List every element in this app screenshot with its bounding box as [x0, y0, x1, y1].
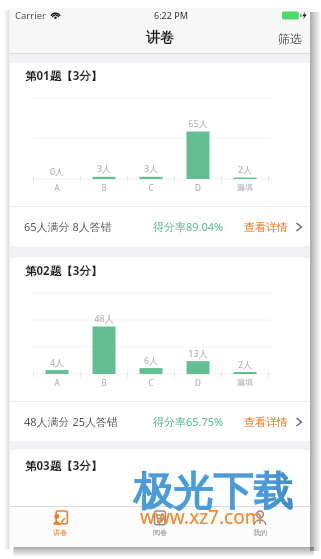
- button[interactable]: 第02题【3分】: [10, 258, 310, 441]
- staticText: 第02题【3分】: [25, 263, 103, 279]
- button[interactable]: 我的: [210, 507, 310, 547]
- staticText: A: [43, 182, 71, 193]
- staticText: 阅卷: [153, 528, 167, 537]
- staticText: 2人: [231, 163, 259, 175]
- staticText: 查看详情: [244, 415, 288, 429]
- staticText: 第03题【3分】: [25, 458, 103, 474]
- button[interactable]: 查看详情: [244, 220, 304, 234]
- staticText: 讲卷: [53, 528, 67, 537]
- button[interactable]: 阅卷: [110, 507, 210, 547]
- button[interactable]: 筛选: [270, 26, 310, 51]
- staticText: 得分率65.75%: [153, 414, 224, 429]
- staticText: www.xz7.com: [140, 504, 263, 530]
- staticText: 0人: [43, 165, 71, 177]
- button[interactable]: 查看详情: [244, 415, 304, 429]
- staticText: D: [184, 377, 212, 388]
- staticText: B: [90, 182, 118, 193]
- staticText: 2人: [231, 358, 259, 370]
- staticText: 我的: [253, 528, 267, 537]
- staticText: 讲卷: [146, 29, 174, 47]
- staticText: 6:22 PM: [154, 9, 188, 21]
- button[interactable]: 讲卷: [10, 507, 110, 547]
- staticText: 13人: [184, 347, 212, 359]
- staticText: 65人: [184, 117, 212, 129]
- staticText: 4人: [43, 356, 71, 368]
- staticText: 查看详情: [244, 220, 288, 234]
- button[interactable]: 第01题【3分】: [10, 63, 310, 246]
- staticText: Carrier: [15, 9, 46, 22]
- staticText: 漏填: [231, 182, 259, 192]
- staticText: 3人: [90, 162, 118, 174]
- staticText: 漏填: [231, 377, 259, 387]
- staticText: 得分率89.04%: [153, 219, 224, 234]
- staticText: 6人: [137, 354, 165, 366]
- staticText: 筛选: [278, 31, 302, 46]
- staticText: 极光下载: [133, 466, 293, 516]
- staticText: 48人: [90, 312, 118, 324]
- staticText: A: [43, 377, 71, 388]
- staticText: 65人满分 8人答错: [24, 219, 112, 234]
- staticText: C: [137, 182, 165, 193]
- staticText: C: [137, 377, 165, 388]
- staticText: 48人满分 25人答错: [24, 414, 119, 429]
- staticText: D: [184, 182, 212, 193]
- staticText: B: [90, 377, 118, 388]
- staticText: 3人: [137, 162, 165, 174]
- staticText: 第01题【3分】: [25, 68, 103, 84]
